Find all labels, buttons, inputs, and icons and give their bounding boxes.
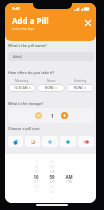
staticText: Morning bbox=[15, 78, 29, 82]
button[interactable]: Pill icon 1 bbox=[8, 136, 23, 147]
staticText: 56 bbox=[50, 159, 55, 164]
staticText: 00 bbox=[50, 179, 55, 184]
staticText: 59 bbox=[49, 174, 55, 179]
staticText: 8 bbox=[35, 164, 38, 169]
staticText: Just a few taps bbox=[12, 26, 35, 30]
staticText: What's the dosage? bbox=[8, 101, 44, 106]
button[interactable]: Pill icon 2 bbox=[25, 136, 40, 147]
staticText: 1 bbox=[51, 113, 54, 119]
staticText: 1 bbox=[35, 189, 38, 194]
button[interactable]: NONE bbox=[66, 84, 94, 92]
button[interactable]: 10:30 AM bbox=[8, 84, 36, 92]
staticText: Evening bbox=[74, 78, 87, 82]
staticText: What's the pill name? bbox=[8, 43, 47, 48]
staticText: PM bbox=[66, 179, 72, 184]
staticText: NONE bbox=[45, 86, 54, 90]
button[interactable]: Pill icon 3 bbox=[42, 136, 58, 147]
button[interactable]: Pill icon 5 bbox=[78, 136, 94, 147]
staticText: 10 bbox=[33, 174, 39, 179]
staticText: 7 bbox=[35, 159, 38, 164]
staticText: Noon bbox=[47, 78, 56, 82]
staticText: 12 bbox=[34, 184, 39, 189]
button[interactable]: NONE bbox=[37, 84, 65, 92]
staticText: 01 bbox=[50, 184, 55, 189]
staticText: NONE bbox=[74, 86, 83, 90]
button[interactable]: Close bbox=[82, 17, 94, 29]
staticText: AM bbox=[65, 174, 73, 179]
button[interactable]: Increase dose bbox=[61, 112, 68, 119]
staticText: 11 bbox=[34, 179, 39, 184]
button[interactable]: Decrease dose bbox=[35, 112, 42, 119]
button[interactable]: Advil bbox=[8, 52, 94, 61]
staticText: 02 bbox=[50, 189, 55, 194]
staticText: 10:30 AM bbox=[14, 86, 28, 90]
staticText: Add a Pill bbox=[12, 15, 49, 26]
staticText: 58 bbox=[50, 169, 55, 174]
staticText: Choose a pill icon bbox=[8, 126, 40, 131]
staticText: 9:41 bbox=[12, 6, 20, 11]
staticText: How often do you take it? bbox=[8, 70, 55, 75]
button[interactable]: Pill icon 4 bbox=[60, 136, 76, 147]
staticText: 57 bbox=[50, 164, 55, 169]
staticText: 9 bbox=[35, 169, 38, 174]
staticText: Advil bbox=[13, 54, 23, 59]
